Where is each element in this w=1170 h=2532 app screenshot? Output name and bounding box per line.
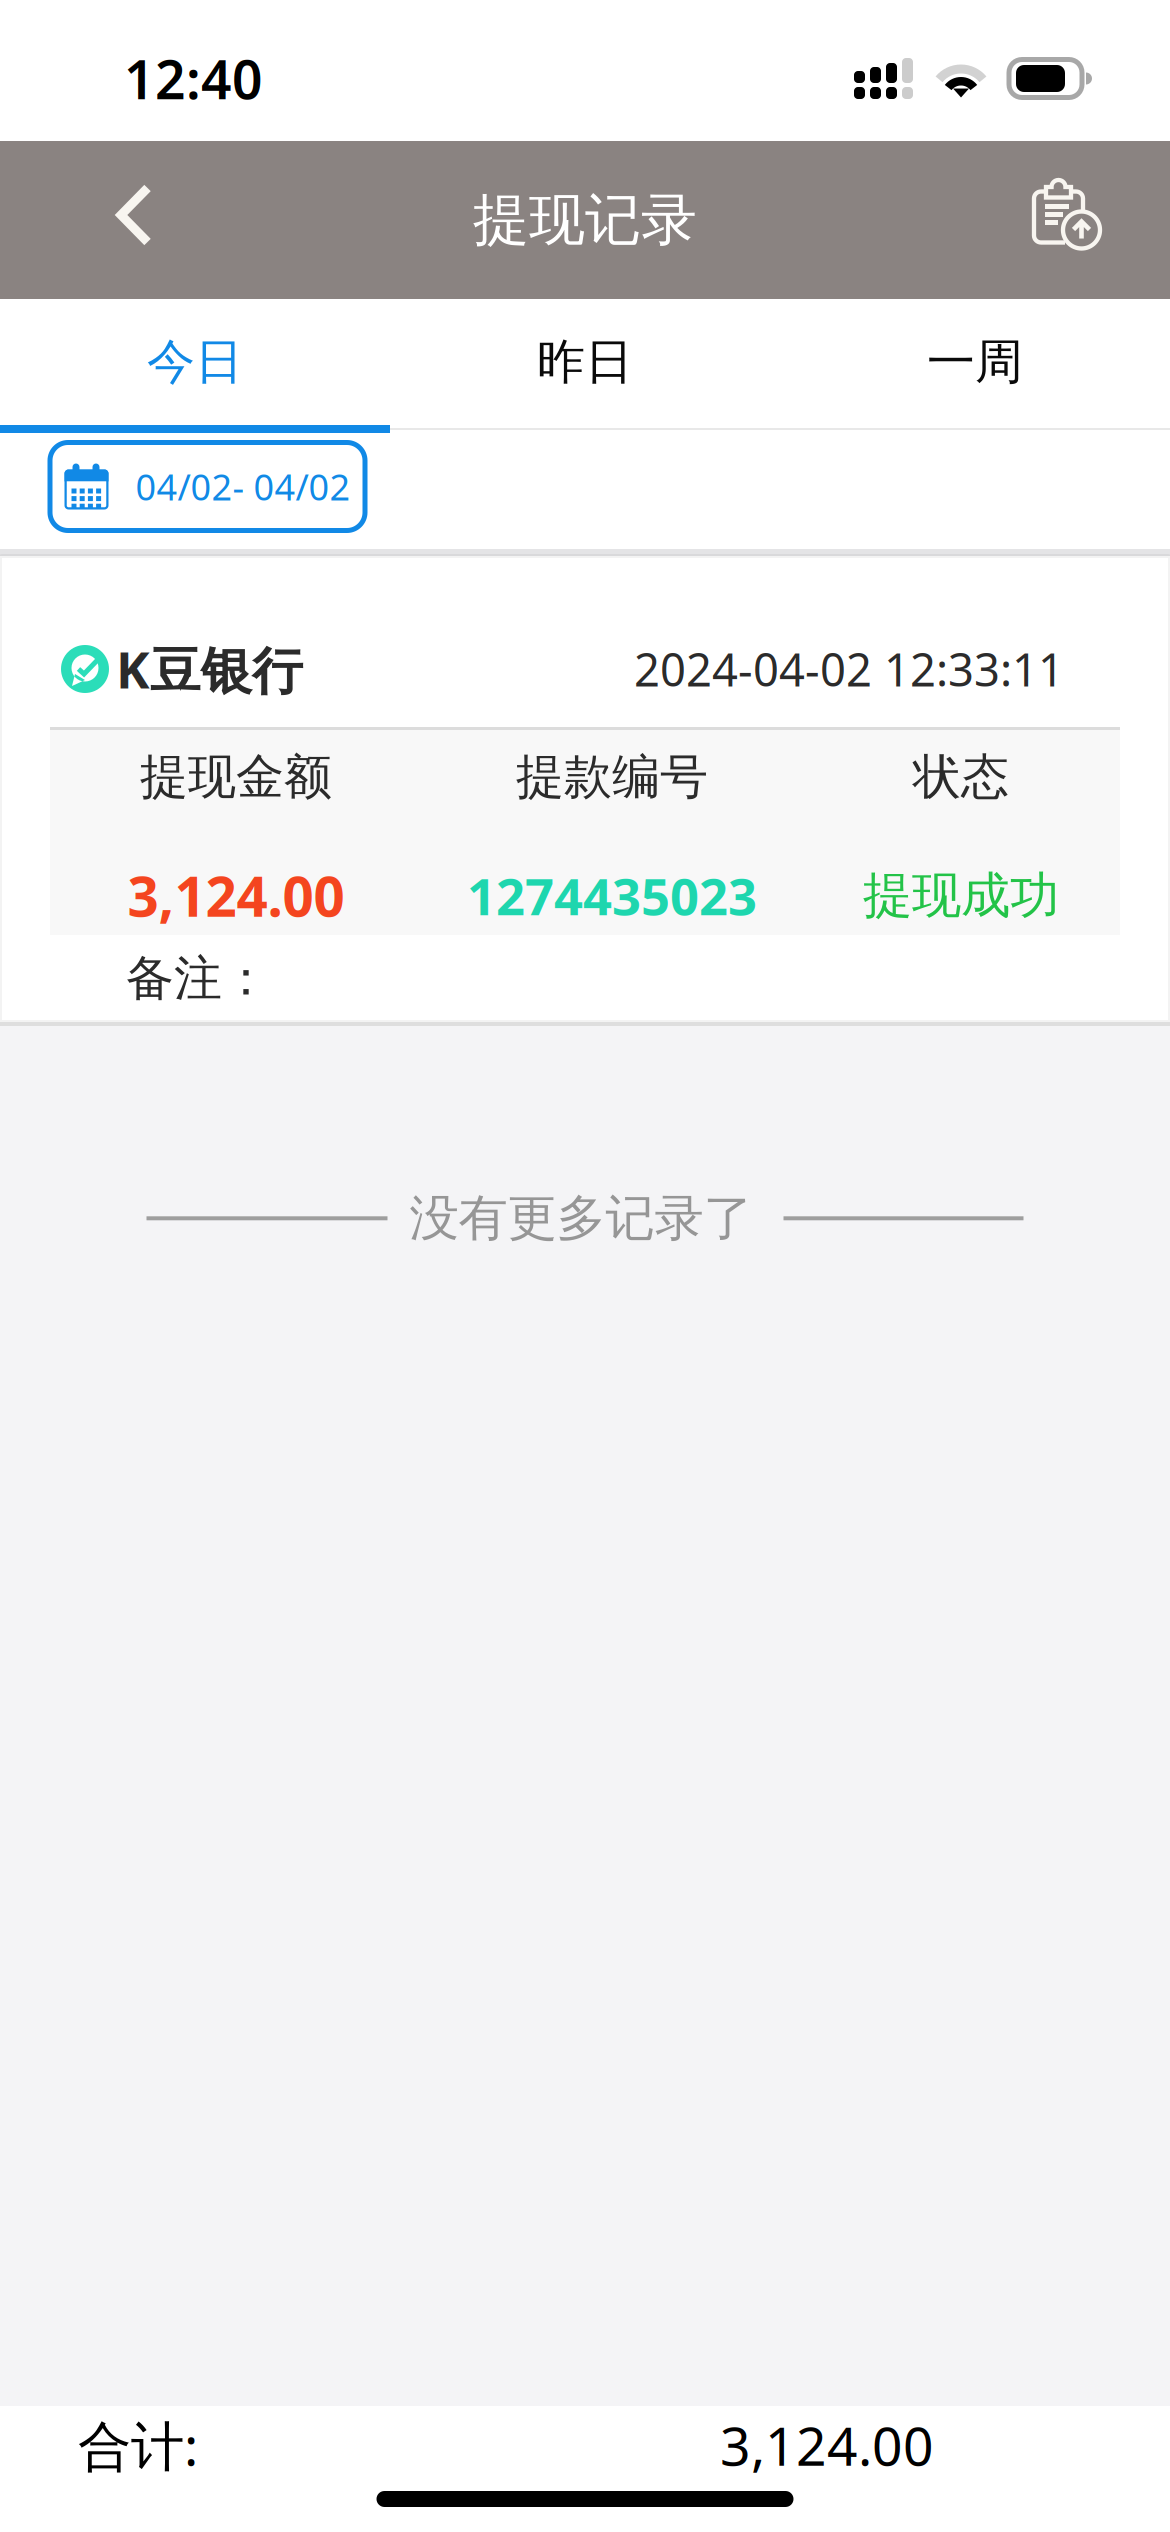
staticText: K豆银行: [116, 635, 303, 703]
staticText: 提现记录: [473, 186, 697, 254]
button[interactable]: Back: [0, 141, 198, 299]
staticText: 2024-04-02 12:33:11: [634, 639, 1064, 699]
staticText: 提款编号: [516, 747, 708, 806]
staticText: 提现成功: [863, 865, 1059, 926]
button[interactable]: 昨日: [390, 299, 780, 425]
button[interactable]: Export records: [1032, 141, 1170, 299]
staticText: 今日: [147, 332, 243, 391]
staticText: 3,124.00: [720, 2410, 934, 2480]
staticText: 状态: [913, 747, 1009, 806]
button[interactable]: 今日: [0, 299, 390, 425]
button[interactable]: 一周: [780, 299, 1170, 425]
staticText: 1274435023: [467, 862, 757, 929]
staticText: 12:40: [124, 43, 263, 114]
button[interactable]: 04/02- 04/02: [50, 442, 365, 530]
staticText: 备注：: [126, 949, 270, 1008]
staticText: 一周: [927, 332, 1023, 391]
staticText: 04/02- 04/02: [135, 463, 350, 510]
staticText: 提现金额: [140, 747, 332, 806]
staticText: 3,124.00: [127, 859, 344, 932]
staticText: 合计:: [78, 2410, 198, 2480]
staticText: 昨日: [537, 332, 633, 391]
staticText: 没有更多记录了: [409, 1188, 752, 1249]
